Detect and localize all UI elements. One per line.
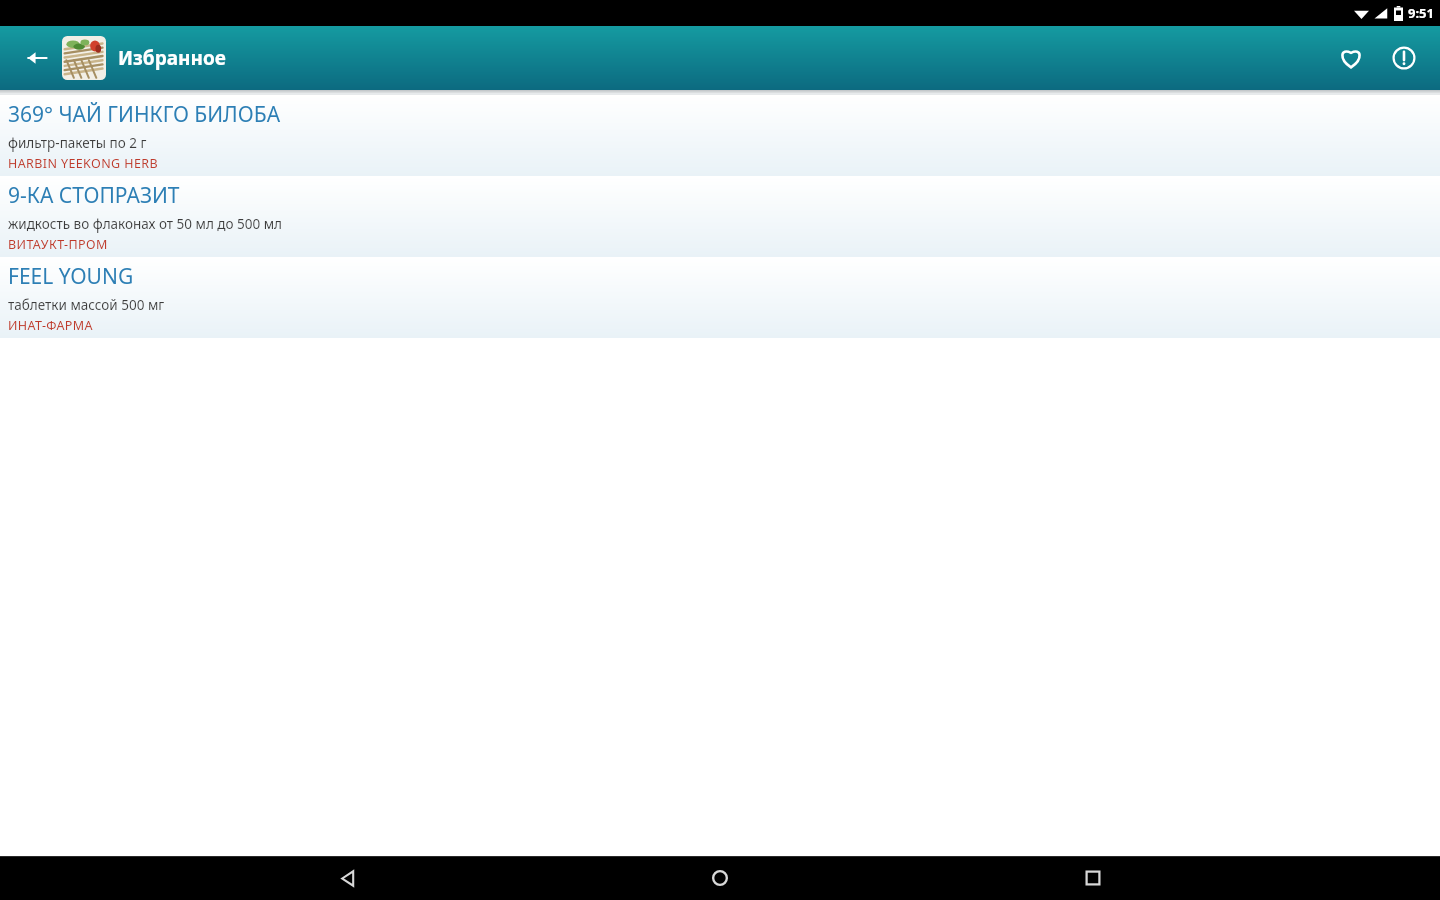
- staticText: HARBIN YEEKONG HERB: [8, 155, 158, 172]
- button[interactable]: Info: [1382, 36, 1426, 80]
- staticText: ИНАТ-ФАРМА: [8, 317, 93, 334]
- staticText: FEEL YOUNG: [8, 262, 134, 291]
- staticText: таблетки массой 500 мг: [8, 296, 165, 314]
- button[interactable]: Recent apps: [1067, 856, 1119, 900]
- button[interactable]: Favorites: [1327, 34, 1375, 82]
- button[interactable]: Home: [694, 856, 746, 900]
- button[interactable]: 9-КА СТОПРАЗИТ: [0, 176, 1440, 257]
- staticText: Избранное: [118, 45, 226, 71]
- staticText: жидкость во флаконах от 50 мл до 500 мл: [8, 215, 283, 233]
- staticText: 369° ЧАЙ ГИНКГО БИЛОБА: [8, 100, 281, 129]
- button[interactable]: Back: [16, 37, 58, 79]
- button[interactable]: Back: [321, 856, 373, 900]
- staticText: 9:51: [1408, 4, 1434, 22]
- button[interactable]: 369° ЧАЙ ГИНКГО БИЛОБА: [0, 95, 1440, 176]
- button[interactable]: FEEL YOUNG: [0, 257, 1440, 338]
- staticText: 9-КА СТОПРАЗИТ: [8, 181, 180, 210]
- staticText: ВИТАУКТ-ПРОМ: [8, 236, 108, 253]
- staticText: фильтр-пакеты по 2 г: [8, 134, 147, 152]
